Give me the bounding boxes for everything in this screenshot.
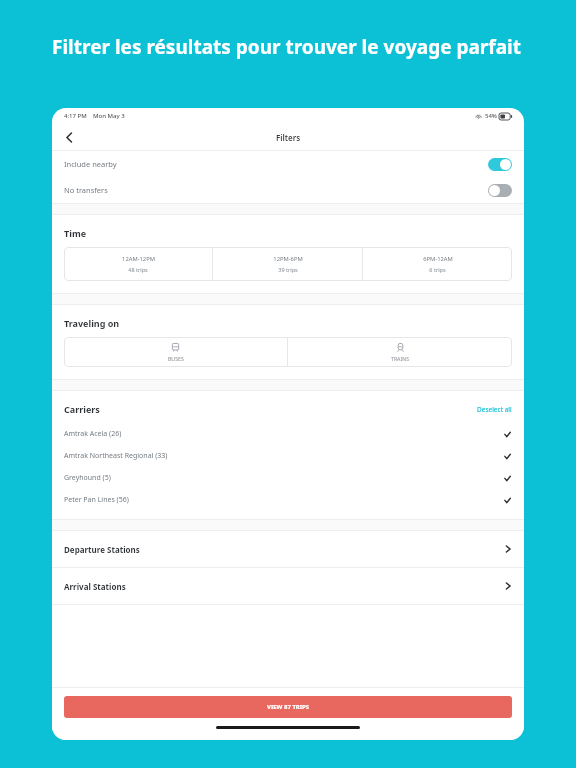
staticText: 6PM-12AM [423, 255, 453, 263]
button[interactable]: Amtrak Northeast Regional (33) [64, 445, 512, 467]
staticText: Filtrer les résultats pour trouver le vo… [52, 34, 521, 60]
staticText: 12PM-6PM [273, 255, 303, 263]
staticText: Mon May 3 [93, 112, 125, 120]
button[interactable]: TRAINS [288, 337, 512, 367]
button[interactable]: VIEW 87 TRIPS [64, 696, 512, 718]
staticText: Include nearby [64, 159, 117, 169]
staticText: Deselect all [477, 405, 512, 414]
staticText: TRAINS [391, 355, 409, 362]
staticText: Carriers [64, 403, 100, 415]
button[interactable]: Departure Stations [52, 531, 524, 567]
staticText: BUSES [168, 355, 184, 362]
staticText: 4:17 PM [64, 112, 87, 120]
button[interactable]: Deselect all [477, 405, 512, 414]
button[interactable]: Peter Pan Lines (56) [64, 489, 512, 511]
staticText: Amtrak Acela (26) [64, 429, 122, 439]
button[interactable]: Amtrak Acela (26) [64, 423, 512, 445]
button[interactable]: 12PM-6PM [213, 247, 362, 281]
staticText: 54% [485, 112, 497, 120]
staticText: Traveling on [64, 317, 120, 329]
staticText: Greyhound (5) [64, 473, 111, 483]
staticText: Arrival Stations [64, 581, 126, 592]
button[interactable]: 12AM-12PM [64, 247, 212, 281]
button[interactable]: Include nearby [64, 151, 512, 177]
button[interactable]: Greyhound (5) [64, 467, 512, 489]
staticText: Peter Pan Lines (56) [64, 495, 129, 505]
staticText: No transfers [64, 185, 108, 195]
staticText: Filters [276, 132, 301, 143]
staticText: 6 trips [429, 266, 446, 273]
button[interactable]: Back [58, 126, 80, 148]
staticText: 12AM-12PM [122, 255, 155, 263]
staticText: 48 trips [128, 266, 148, 273]
staticText: Departure Stations [64, 544, 140, 555]
button[interactable]: BUSES [64, 337, 287, 367]
staticText: 39 trips [278, 266, 298, 273]
staticText: Time [64, 227, 87, 239]
button[interactable]: Arrival Stations [52, 568, 524, 604]
button[interactable]: 6PM-12AM [363, 247, 512, 281]
staticText: Amtrak Northeast Regional (33) [64, 451, 168, 461]
staticText: VIEW 87 TRIPS [267, 703, 310, 711]
button[interactable]: No transfers [64, 177, 512, 203]
